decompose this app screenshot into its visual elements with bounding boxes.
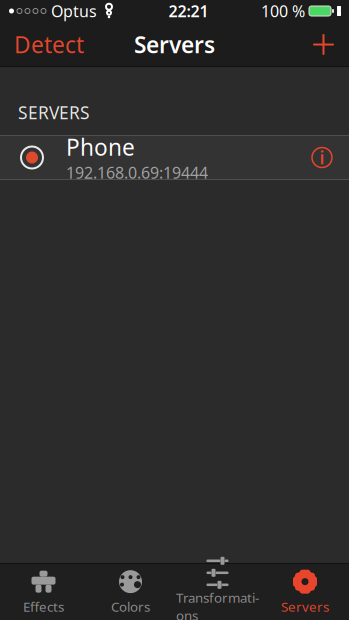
button[interactable]: Colors: [87, 564, 174, 620]
staticText: 100 %: [261, 0, 305, 22]
button[interactable]: Detect: [2, 19, 96, 69]
staticText: 192.168.0.69:19444: [66, 162, 208, 183]
staticText: SERVERS: [18, 101, 90, 124]
staticText: Servers: [134, 29, 215, 59]
button[interactable]: Phone: [0, 136, 349, 179]
staticText: Transformations: [176, 589, 259, 620]
staticText: Effects: [23, 598, 64, 615]
button[interactable]: Effects: [0, 564, 87, 620]
staticText: Detect: [14, 29, 84, 59]
staticText: i: [319, 146, 324, 169]
staticText: Optus: [51, 0, 97, 22]
button[interactable]: Transformations: [174, 564, 261, 620]
staticText: Colors: [111, 598, 150, 615]
button[interactable]: Add server: [300, 23, 347, 66]
staticText: 22:21: [168, 0, 208, 22]
button[interactable]: Servers: [261, 564, 349, 620]
staticText: Servers: [281, 598, 329, 615]
staticText: Phone: [66, 132, 135, 162]
